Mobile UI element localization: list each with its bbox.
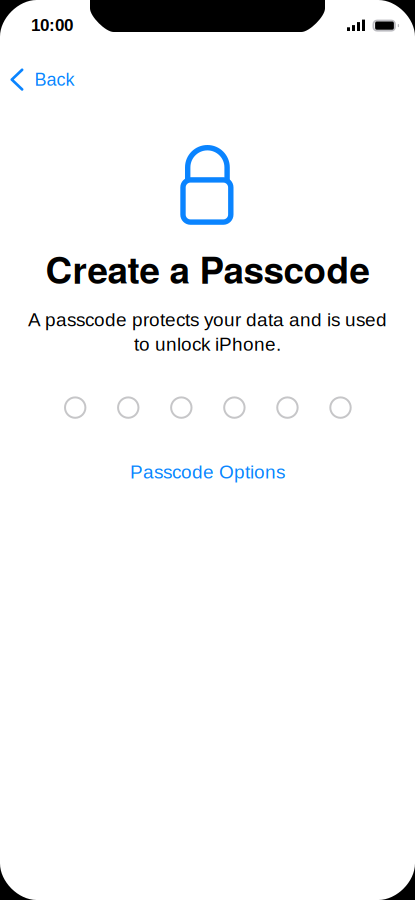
button[interactable]: Passcode Options bbox=[114, 450, 300, 494]
staticText: Back bbox=[35, 69, 75, 90]
staticText: A passcode protects your data and is use… bbox=[28, 309, 387, 330]
button[interactable]: Back bbox=[6, 57, 84, 101]
staticText: Passcode Options bbox=[130, 461, 285, 482]
staticText: to unlock iPhone. bbox=[134, 334, 281, 355]
staticText: Create a Passcode bbox=[45, 242, 369, 295]
staticText: 10:00 bbox=[31, 16, 73, 35]
